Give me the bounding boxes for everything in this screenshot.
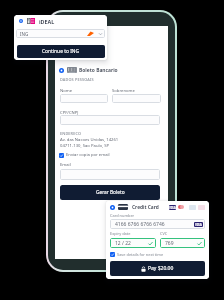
other: ING xyxy=(87,31,94,36)
staticText: iDEAL xyxy=(39,18,55,24)
button[interactable] xyxy=(112,94,161,103)
button[interactable]: 12 / 22 xyxy=(110,238,156,248)
other: Credit card xyxy=(118,204,128,210)
other: iDEAL xyxy=(27,18,35,24)
button[interactable]: iDEAL xyxy=(19,18,55,24)
staticText: 4166 6766 6766 6746 xyxy=(115,221,165,228)
staticText: Enviar copia por email xyxy=(66,152,110,158)
staticText: Sobrenome xyxy=(112,88,135,94)
button[interactable]: 769 xyxy=(160,238,205,248)
staticText: Save details for next time xyxy=(117,252,164,257)
button[interactable]: ING xyxy=(16,29,105,38)
button[interactable] xyxy=(60,169,160,180)
button[interactable]: Boleto xyxy=(59,66,118,74)
staticText: ING xyxy=(20,31,29,37)
staticText: Pay $20.00 xyxy=(148,265,174,272)
staticText: Nome xyxy=(60,88,72,94)
staticText: 12 / 22 xyxy=(115,240,131,247)
staticText: Card number xyxy=(110,213,135,218)
staticText: Email xyxy=(60,162,71,168)
staticText: VISA xyxy=(169,206,176,210)
button[interactable]: Save details for next time xyxy=(110,251,164,257)
staticText: 04711-130, Sao Paulo, SP xyxy=(60,143,110,149)
staticText: ENDERECO xyxy=(60,131,82,136)
button[interactable]: Pay $20.00 xyxy=(110,261,205,276)
staticText: Av. das Nacoes Unidas, 14261 xyxy=(60,137,119,143)
staticText: CVC xyxy=(160,231,168,236)
button[interactable]: Enviar copia por email xyxy=(59,152,110,158)
button[interactable]: 4166 6766 6766 6746 xyxy=(110,219,205,229)
button[interactable] xyxy=(60,115,160,125)
other: Mastercard xyxy=(178,205,184,209)
staticText: Gerar Boleto xyxy=(96,189,125,196)
staticText: Expiry date xyxy=(110,231,131,236)
staticText: Continue to ING xyxy=(42,48,80,55)
staticText: Credit Card xyxy=(132,204,159,210)
button[interactable] xyxy=(60,94,108,103)
staticText: CPF/CNPJ xyxy=(60,110,79,116)
button[interactable]: Continue to ING xyxy=(17,45,105,58)
other: Expand xyxy=(99,33,102,35)
button[interactable]: Credit card xyxy=(110,204,205,210)
staticText: VISA xyxy=(195,223,202,227)
button[interactable]: Gerar Boleto xyxy=(60,185,160,200)
staticText: 769 xyxy=(165,240,174,247)
staticText: DADOS PESSOAIS xyxy=(60,77,94,82)
staticText: Boleto Bancario xyxy=(79,67,118,74)
other: Boleto xyxy=(67,67,77,73)
